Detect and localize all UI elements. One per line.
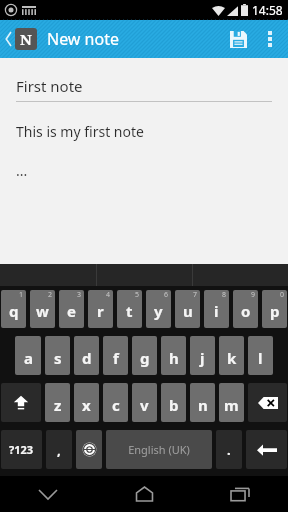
staticText: 5 [135,290,140,300]
staticText: 6 [164,290,169,300]
staticText: English (UK) [128,442,190,457]
button[interactable]: s [45,336,70,375]
staticText: 3 [77,290,82,300]
button[interactable]: Home [96,476,192,512]
button[interactable]: k [219,336,244,375]
staticText: c [112,395,120,415]
button[interactable]: z [45,383,70,422]
staticText: i [214,301,219,321]
staticText: d [82,348,92,368]
staticText: k [227,348,237,368]
staticText: o [241,301,251,321]
staticText: 1 [19,290,24,300]
staticText: This is my first note [16,122,144,141]
button[interactable]: h [161,336,186,375]
staticText: . [227,441,231,459]
button[interactable]: x [74,383,99,422]
staticText: t [126,301,133,321]
button[interactable]: Comma [46,430,72,469]
staticText: p [270,301,280,321]
button[interactable]: Hide keyboard [0,476,96,512]
staticText: 8 [222,290,227,300]
button[interactable]: a [15,336,41,375]
button[interactable]: g [132,336,157,375]
staticText: x [82,395,91,415]
button[interactable]: Recents [192,476,288,512]
button[interactable]: Change language [76,430,102,469]
staticText: n [198,395,208,415]
button[interactable]: c [103,383,128,422]
button[interactable]: Symbols [1,430,42,469]
staticText: w [36,301,49,321]
staticText: 7 [193,290,198,300]
staticText: a [24,348,33,368]
staticText: z [54,395,62,415]
button[interactable]: f [103,336,128,375]
button[interactable]: r [88,290,113,328]
button[interactable]: l [248,336,273,375]
staticText: 2 [48,290,53,300]
staticText: , [57,441,61,459]
staticText: r [97,301,104,321]
staticText: m [224,395,239,415]
staticText: N [20,29,32,49]
button[interactable]: t [117,290,142,328]
staticText: 0 [280,290,285,300]
button[interactable]: u [175,290,200,328]
button[interactable]: b [161,383,186,422]
button[interactable]: Backspace [248,383,287,422]
staticText: j [200,348,205,368]
staticText: b [169,395,179,415]
staticText: h [169,348,179,368]
button[interactable]: y [146,290,171,328]
staticText: First note [16,76,83,96]
button[interactable]: Space [106,430,212,469]
staticText: 9 [251,290,256,300]
button[interactable]: Save [220,21,256,57]
staticText: g [140,348,150,368]
staticText: s [54,348,62,368]
staticText: ?123 [9,442,34,457]
staticText: l [258,348,263,368]
staticText: f [113,348,119,368]
button[interactable]: d [74,336,99,375]
staticText: v [140,395,149,415]
button[interactable]: Up [3,28,39,50]
staticText: 14:58 [252,2,283,18]
button[interactable]: Enter [246,430,287,469]
staticText: q [9,301,19,321]
button[interactable]: Period [216,430,242,469]
button[interactable]: First note [16,76,272,102]
staticText: y [154,301,163,321]
button[interactable]: o [233,290,258,328]
staticText: u [183,301,193,321]
staticText: 4 [106,290,111,300]
button[interactable]: More options [256,21,284,57]
staticText: ... [16,161,28,180]
button[interactable]: e [59,290,84,328]
button[interactable]: i [204,290,229,328]
other: Up [5,32,13,46]
button[interactable]: w [30,290,55,328]
button[interactable]: v [132,383,157,422]
button[interactable]: p [262,290,287,328]
button[interactable]: j [190,336,215,375]
staticText: e [67,301,76,321]
button[interactable]: n [190,383,215,422]
staticText: New note [47,28,119,50]
button[interactable]: m [219,383,244,422]
button[interactable]: This is my first note [16,122,272,264]
button[interactable]: Shift [1,383,41,422]
button[interactable]: q [1,290,26,328]
